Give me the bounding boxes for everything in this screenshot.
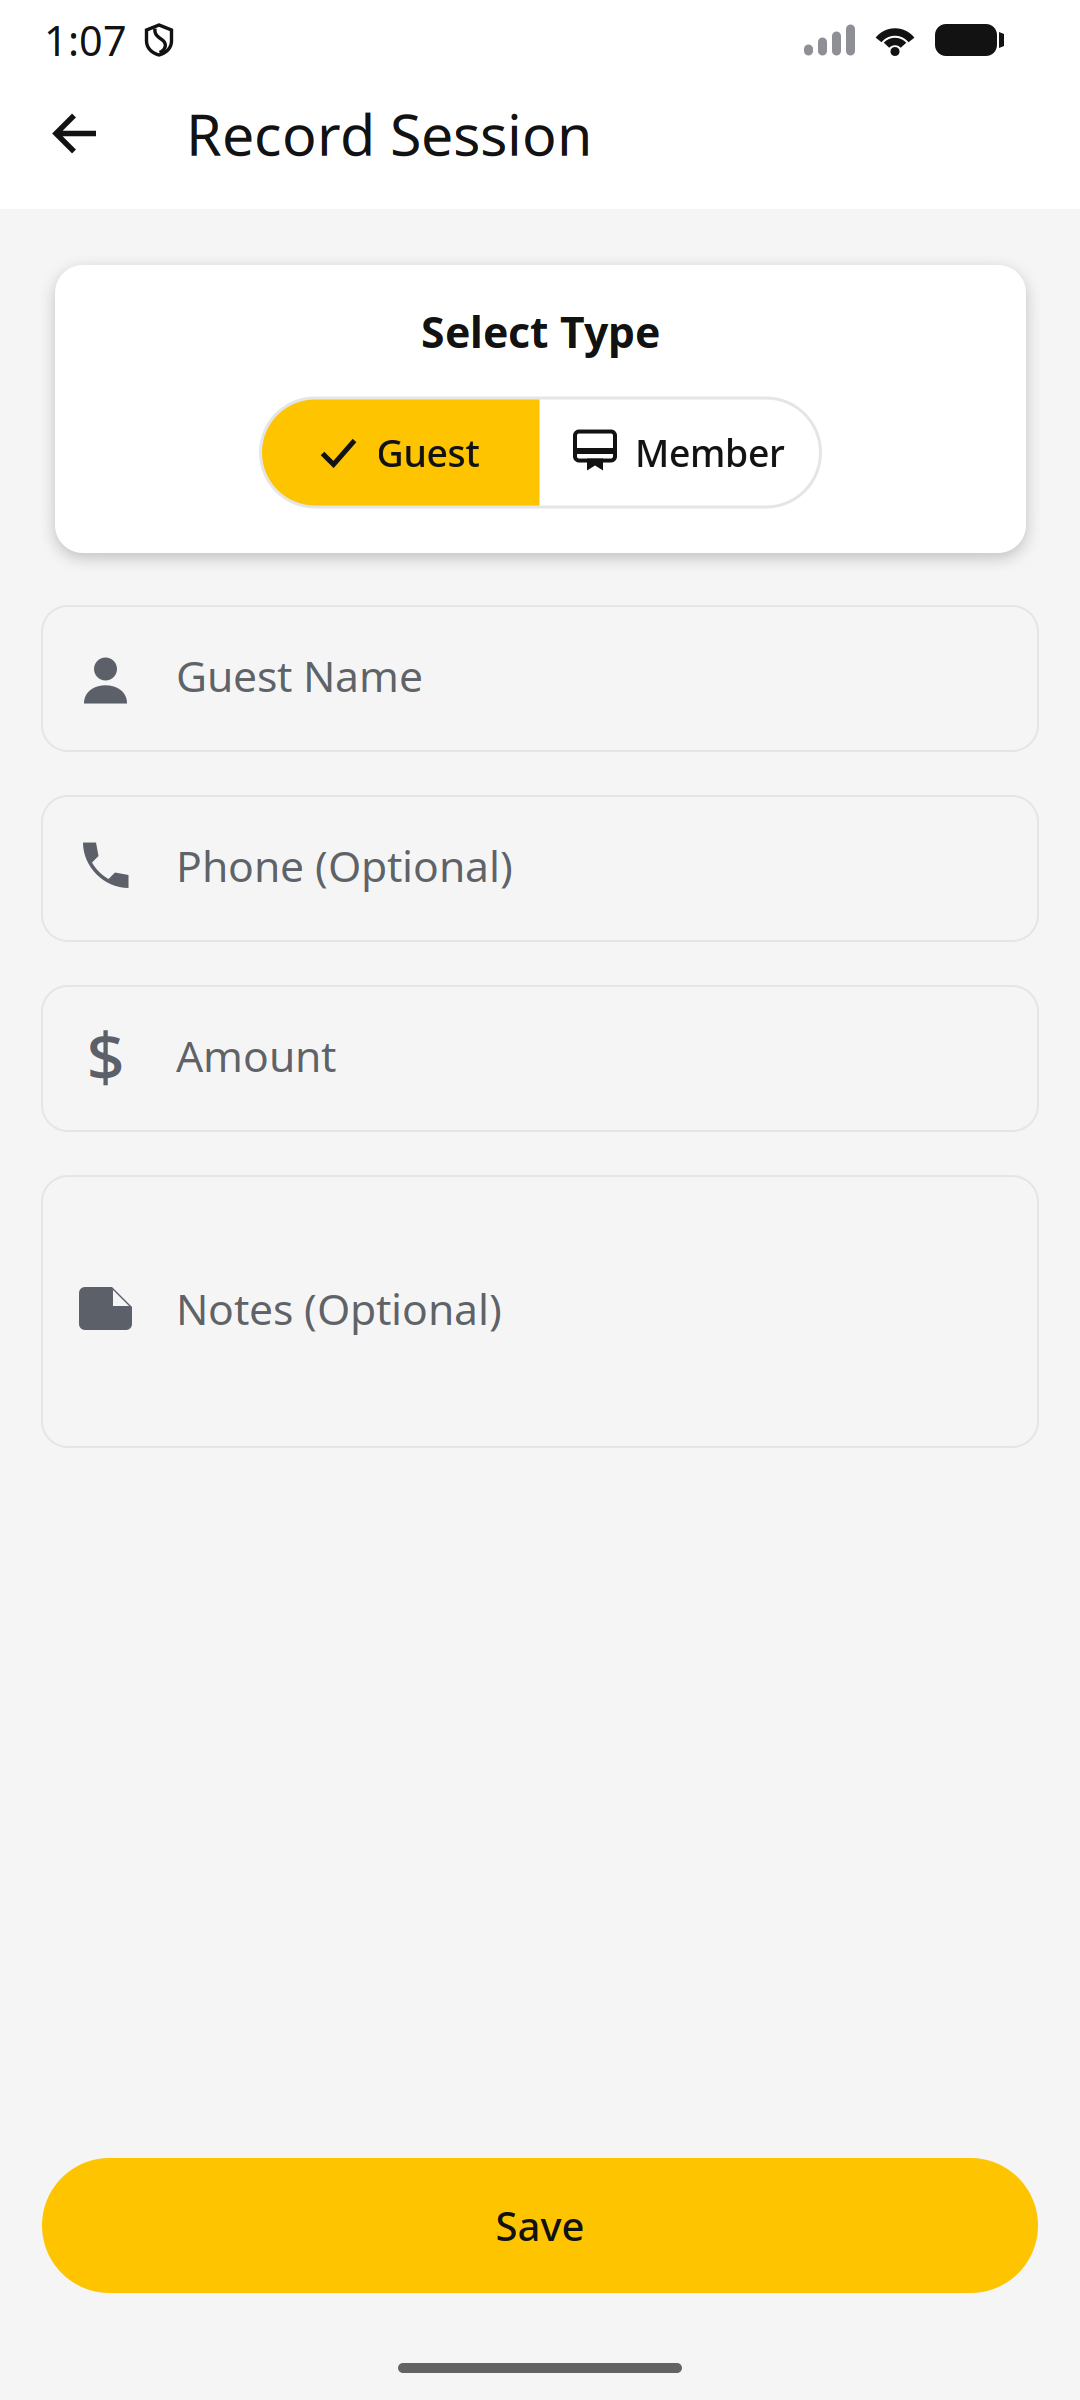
staticText: Phone (Optional): [176, 837, 513, 894]
staticText: Guest: [376, 428, 479, 477]
button[interactable]: Guest Name: [42, 606, 1038, 751]
staticText: Select Type: [421, 303, 660, 360]
button[interactable]: Guest: [260, 398, 539, 507]
staticText: Notes (Optional): [176, 1280, 502, 1337]
staticText: 1:07: [44, 13, 127, 67]
button[interactable]: Phone (Optional): [42, 796, 1038, 941]
staticText: Guest Name: [176, 647, 423, 704]
button[interactable]: Back: [26, 83, 126, 183]
staticText: Save: [495, 2199, 584, 2252]
button[interactable]: Notes (Optional): [42, 1176, 1038, 1447]
button[interactable]: Member: [539, 398, 820, 507]
staticText: Amount: [176, 1027, 336, 1084]
staticText: $: [86, 1011, 124, 1100]
staticText: Record Session: [186, 95, 592, 171]
button[interactable]: Save: [42, 2158, 1038, 2293]
button[interactable]: $: [42, 986, 1038, 1131]
staticText: Member: [635, 428, 785, 477]
